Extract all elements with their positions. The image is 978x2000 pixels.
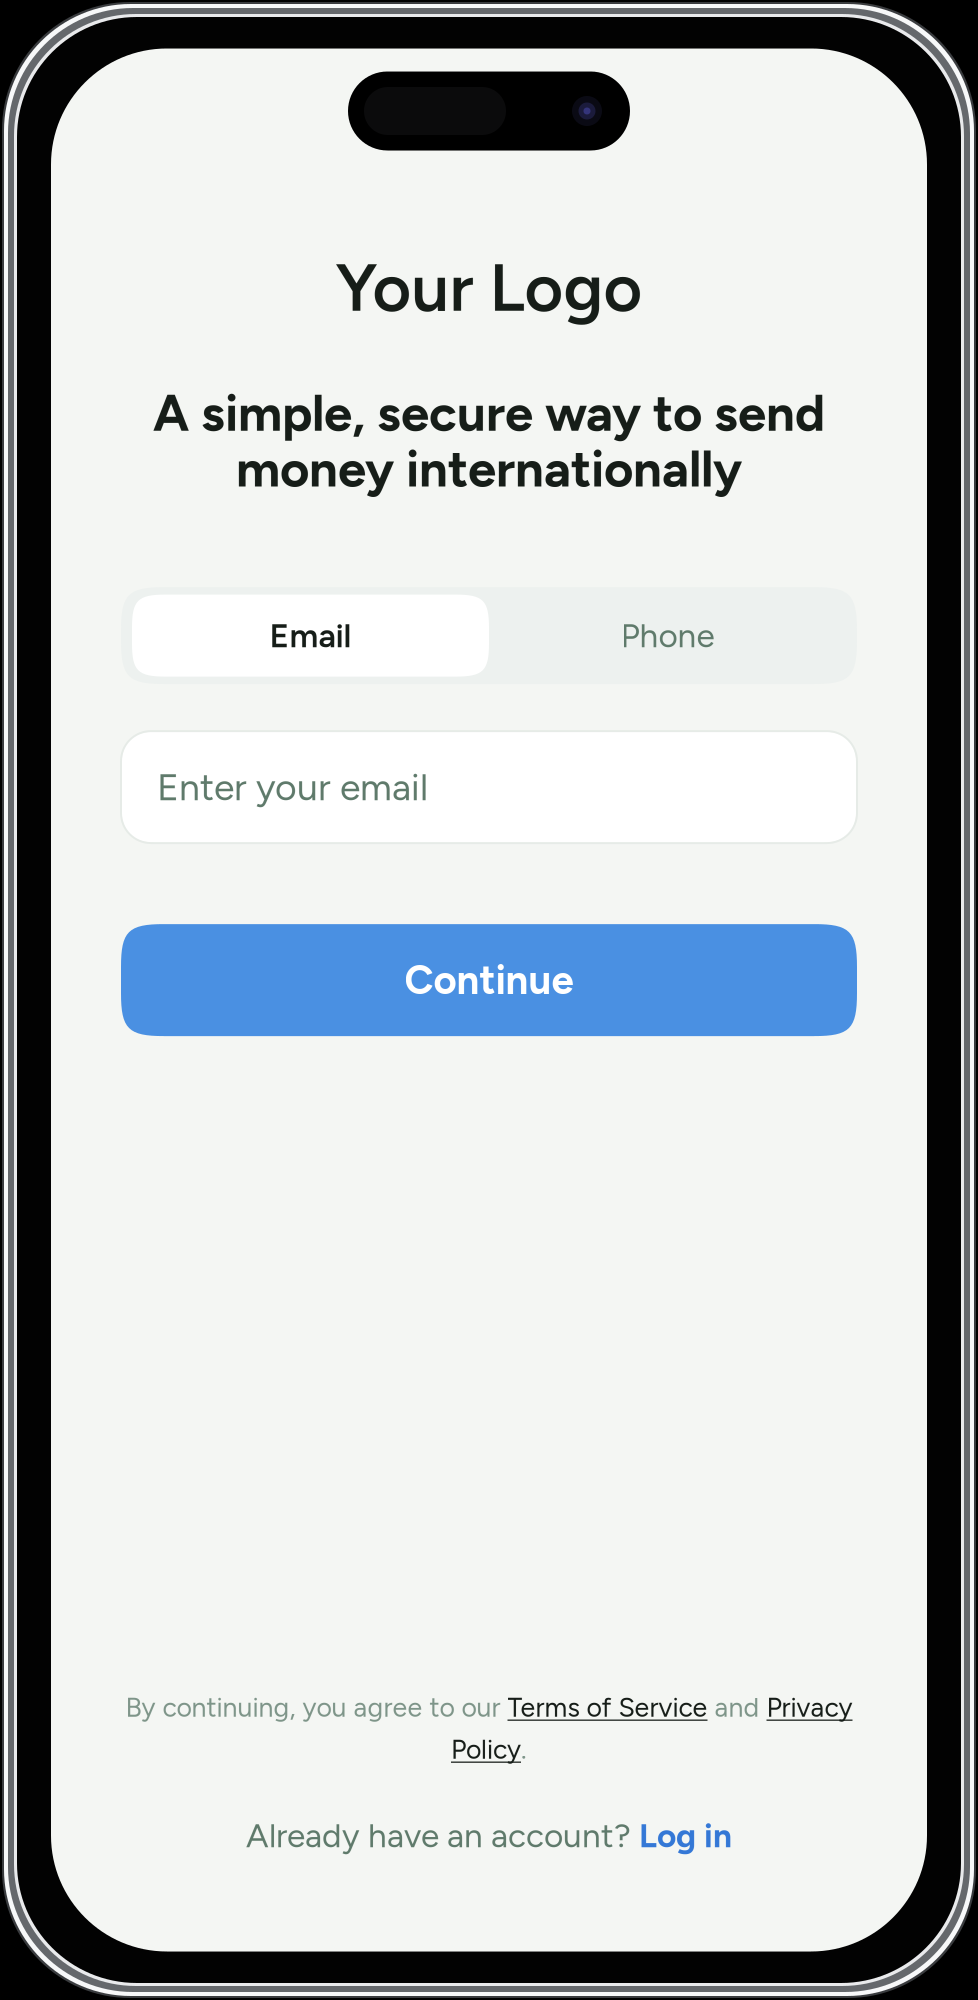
staticText: Your Logo	[335, 247, 642, 327]
button[interactable]: Policy	[451, 1733, 521, 1765]
button[interactable]: Enter your email	[121, 731, 857, 843]
button[interactable]: Privacy	[766, 1691, 852, 1723]
button[interactable]: Continue	[121, 924, 857, 1036]
staticText: Phone	[620, 616, 714, 656]
staticText: money internationally	[236, 438, 742, 499]
staticText: Terms of Service	[507, 1691, 707, 1723]
staticText: Enter your email	[157, 765, 428, 809]
staticText: A simple, secure way to send	[153, 382, 825, 443]
staticText: and	[707, 1691, 766, 1723]
button[interactable]: Phone	[489, 595, 846, 677]
staticText: Already have an account?	[246, 1815, 639, 1855]
staticText: Privacy	[766, 1691, 852, 1723]
button[interactable]: Terms of Service	[507, 1691, 707, 1723]
staticText: Continue	[404, 956, 573, 1004]
button[interactable]: Already have an account?	[246, 1815, 732, 1855]
staticText: Email	[269, 616, 351, 656]
staticText: Log in	[639, 1815, 732, 1855]
staticText: .	[521, 1733, 527, 1765]
staticText: Policy	[451, 1733, 521, 1765]
staticText: By continuing, you agree to our	[125, 1691, 507, 1723]
button[interactable]: Email	[132, 595, 489, 677]
